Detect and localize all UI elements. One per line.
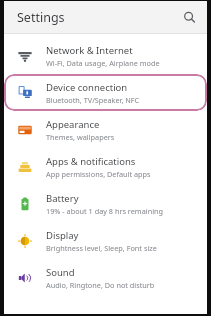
staticText: Wi-Fi, Data usage, Airplane mode	[46, 58, 160, 68]
staticText: Network & Internet	[46, 44, 133, 57]
button[interactable]: Battery	[4, 185, 207, 222]
staticText: Audio, Ringtone, Do not disturb	[46, 280, 155, 290]
staticText: Brightness level, Sleep, Font size	[46, 243, 157, 253]
staticText: Sound	[46, 266, 75, 279]
staticText: Themes, wallpapers	[46, 132, 115, 142]
button[interactable]: Sound	[4, 259, 207, 296]
staticText: Appearance	[46, 118, 100, 131]
button[interactable]: Search	[174, 2, 204, 32]
staticText: 19% - about 1 day 8 hrs remaining	[46, 206, 164, 216]
staticText: Device connection	[46, 81, 128, 94]
staticText: Settings	[17, 9, 65, 26]
button[interactable]: Network & Internet	[4, 37, 207, 74]
button[interactable]: Device connection	[4, 74, 207, 111]
staticText: Battery	[46, 192, 79, 205]
button[interactable]: Apps & notifications	[4, 148, 207, 185]
staticText: Display	[46, 229, 79, 242]
button[interactable]: Appearance	[4, 111, 207, 148]
staticText: Bluetooth, TV/Speaker, NFC	[46, 95, 140, 105]
staticText: App permissions, Default apps	[46, 169, 151, 179]
staticText: Apps & notifications	[46, 155, 136, 168]
button[interactable]: Display	[4, 222, 207, 259]
